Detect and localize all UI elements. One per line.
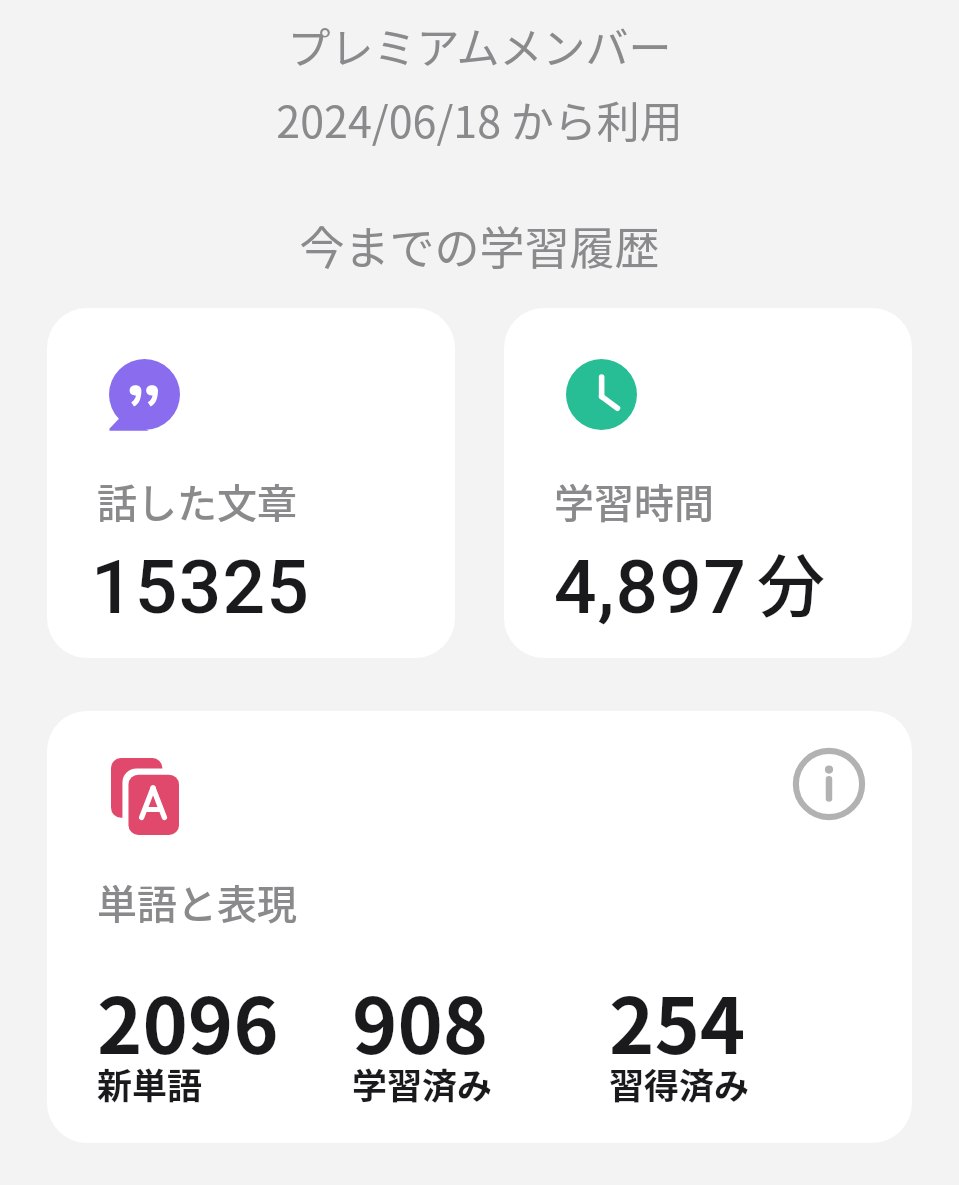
staticText: 2024/06/18 から利用 bbox=[0, 88, 959, 150]
staticText: プレミアムメンバー bbox=[0, 14, 959, 76]
staticText: 15325 bbox=[91, 543, 311, 631]
button[interactable]: 話した文章 bbox=[47, 308, 455, 658]
staticText: 908 bbox=[352, 965, 489, 1076]
staticText: 新単語 bbox=[97, 1058, 203, 1109]
staticText: 学習時間 bbox=[554, 472, 714, 530]
staticText: 話した文章 bbox=[97, 472, 297, 530]
staticText: 2096 bbox=[97, 965, 279, 1076]
staticText: 今までの学習履歴 bbox=[0, 213, 959, 278]
button[interactable]: 学習時間 bbox=[504, 308, 912, 658]
staticText: 分 bbox=[757, 532, 826, 630]
button[interactable]: 単語と表現 bbox=[47, 711, 912, 1143]
staticText: 単語と表現 bbox=[97, 873, 297, 931]
staticText: 習得済み bbox=[609, 1058, 750, 1109]
staticText: 254 bbox=[609, 965, 746, 1076]
staticText: 学習済み bbox=[352, 1058, 493, 1109]
staticText: 4,897 bbox=[554, 543, 748, 631]
button[interactable]: Information bbox=[792, 747, 866, 821]
